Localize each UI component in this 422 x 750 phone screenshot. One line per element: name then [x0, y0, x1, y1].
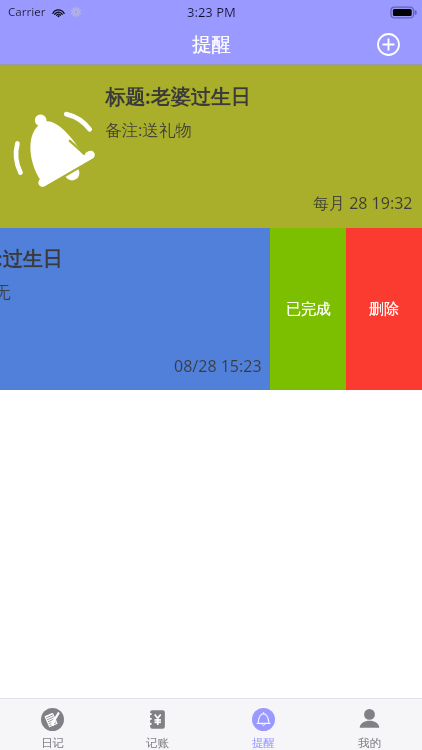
staticText: 提醒 — [252, 736, 275, 750]
button[interactable]: 删除 — [346, 228, 422, 390]
staticText: 备注:送礼物 — [105, 118, 192, 141]
staticText: Carrier — [8, 4, 46, 20]
button[interactable]: 标题:老婆过生日 — [0, 66, 422, 228]
button[interactable]: Add reminder — [377, 33, 400, 56]
staticText: 删除 — [369, 300, 399, 319]
button[interactable]: 提醒 — [210, 699, 316, 750]
staticText: 标题:老婆过生日 — [105, 83, 251, 110]
staticText: 提醒 — [192, 32, 231, 57]
staticText: 我的 — [358, 736, 381, 750]
staticText: 3:23 PM — [187, 3, 236, 21]
button[interactable]: 已完成 — [270, 228, 346, 390]
staticText: 08/28 15:23 — [174, 355, 262, 377]
staticText: 已完成 — [286, 300, 331, 319]
button[interactable]: 日记 — [0, 699, 105, 750]
button[interactable]: 记账 — [105, 699, 210, 750]
button[interactable]: 我的 — [316, 699, 422, 750]
button[interactable]: 标题:过生日 — [0, 228, 270, 390]
staticText: 备注:无 — [0, 280, 11, 303]
staticText: 每月 28 19:32 — [313, 192, 413, 214]
staticText: 记账 — [146, 736, 169, 750]
staticText: 日记 — [41, 736, 64, 750]
staticText: 标题:过生日 — [0, 245, 63, 272]
